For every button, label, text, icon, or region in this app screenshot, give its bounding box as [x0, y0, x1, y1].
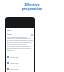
staticText: Practice test [10, 56, 19, 58]
button[interactable]: Badge [31, 34, 33, 36]
button[interactable]: Practice test [6, 54, 34, 60]
button[interactable]: Practice test [6, 60, 34, 66]
staticText: Effective preparation [0, 2, 64, 11]
button[interactable]: Practice test [6, 66, 34, 72]
staticText: Practice test [10, 68, 19, 70]
staticText: Practice test [10, 62, 19, 64]
staticText: Lorem ipsum dolor sit amet consectetur a… [7, 36, 33, 52]
